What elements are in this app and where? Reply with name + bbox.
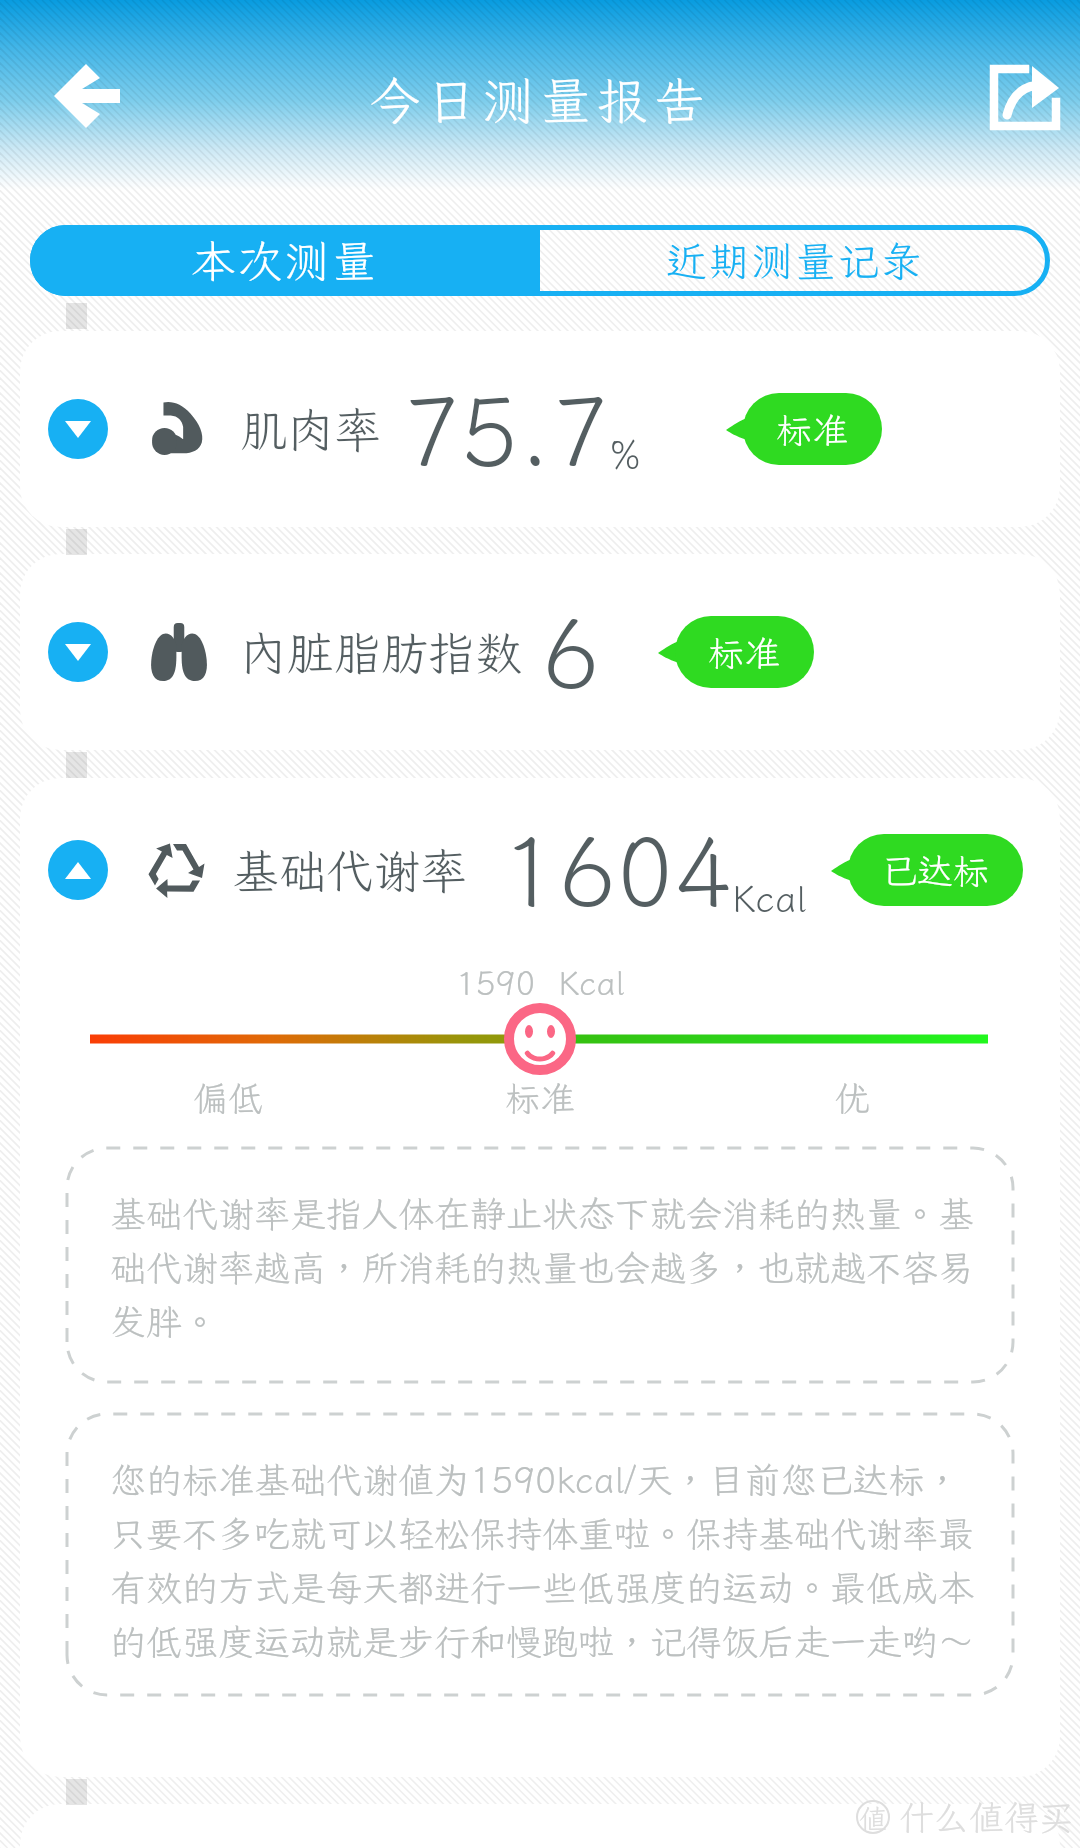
staticText: 标准 bbox=[708, 629, 781, 676]
button[interactable]: Back bbox=[33, 42, 141, 150]
staticText: 本次测量 bbox=[191, 232, 379, 290]
staticText: 标准 bbox=[776, 406, 849, 453]
staticText: 今日测量报告 bbox=[369, 66, 712, 133]
staticText: 标准 bbox=[384, 1075, 696, 1121]
staticText: 优 bbox=[696, 1075, 1008, 1121]
button[interactable]: Collapse bbox=[48, 840, 108, 900]
button[interactable]: Collapse bbox=[48, 778, 1038, 962]
staticText: 您的标准基础代谢值为1590kcal/天，目前您已达标，只要不多吃就可以轻松保持… bbox=[110, 1456, 995, 1666]
button[interactable]: Expand bbox=[48, 622, 108, 682]
staticText: 6 bbox=[542, 589, 600, 715]
staticText: % bbox=[610, 430, 641, 480]
staticText: 基础代谢率 bbox=[232, 839, 467, 901]
button[interactable]: Expand bbox=[48, 399, 108, 459]
button[interactable]: Expand bbox=[20, 554, 1060, 750]
button[interactable]: Share bbox=[969, 44, 1073, 148]
staticText: 肌肉率 bbox=[240, 398, 381, 460]
staticText: 基础代谢率是指人体在静止状态下就会消耗的热量。基础代谢率越高，所消耗的热量也会越… bbox=[110, 1190, 995, 1346]
staticText: 值 bbox=[859, 1800, 888, 1834]
staticText: 近期测量记录 bbox=[666, 234, 924, 288]
staticText: 75.7 bbox=[403, 366, 610, 492]
button[interactable]: Expand bbox=[20, 331, 1060, 527]
button[interactable]: 本次测量 bbox=[30, 225, 540, 296]
staticText: 1590 Kcal bbox=[456, 961, 625, 1004]
staticText: 偏低 bbox=[72, 1075, 384, 1121]
button[interactable]: 近期测量记录 bbox=[540, 225, 1050, 296]
staticText: 1604 bbox=[501, 807, 732, 933]
staticText: 内脏脂肪指数 bbox=[240, 621, 522, 683]
staticText: 什么值得买 bbox=[899, 1794, 1075, 1840]
staticText: Kcal bbox=[732, 874, 806, 923]
staticText: 已达标 bbox=[881, 847, 990, 894]
